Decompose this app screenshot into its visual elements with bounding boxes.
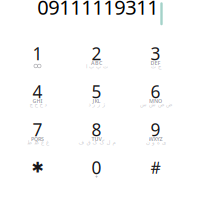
staticText: 2: [91, 42, 101, 65]
button[interactable]: 6: [126, 77, 185, 115]
button[interactable]: 7: [8, 115, 67, 153]
button[interactable]: 4: [8, 77, 67, 115]
button[interactable]: 1: [8, 39, 67, 77]
button[interactable]: ✱: [8, 153, 67, 191]
staticText: 8: [91, 118, 101, 141]
staticText: JKL: [92, 97, 100, 105]
staticText: GHI: [32, 97, 42, 105]
staticText: +: [95, 173, 98, 181]
staticText: 5: [91, 80, 101, 103]
staticText: #: [150, 157, 160, 178]
staticText: 4: [32, 80, 42, 103]
button[interactable]: 9: [126, 115, 185, 153]
staticText: 9: [150, 118, 160, 141]
staticText: م ل گ ک ق ف: [78, 139, 115, 146]
staticText: ج ث: [150, 63, 160, 70]
staticText: 1: [32, 42, 42, 65]
staticText: ی ه و ن: [145, 139, 165, 146]
button[interactable]: #: [126, 153, 185, 191]
staticText: 6: [150, 80, 160, 103]
staticText: 3: [150, 42, 160, 65]
button[interactable]: 2: [67, 39, 126, 77]
staticText: غ ع ظ ط: [26, 139, 48, 146]
button[interactable]: 8: [67, 115, 126, 153]
staticText: DEF: [150, 59, 160, 67]
staticText: TUV: [91, 135, 101, 143]
button[interactable]: 3: [126, 39, 185, 77]
staticText: د خ ح چ: [29, 101, 46, 108]
button[interactable]: 0: [67, 153, 126, 191]
staticText: 7: [32, 118, 42, 141]
staticText: ABC: [91, 59, 102, 67]
staticText: ت پ ب ا: [85, 63, 107, 70]
staticText: MNO: [149, 97, 162, 105]
staticText: 0: [91, 156, 101, 179]
staticText: ✱: [31, 159, 43, 176]
staticText: 09111119311: [37, 0, 158, 20]
staticText: PQRS: [31, 135, 44, 143]
staticText: WXYZ: [148, 135, 162, 143]
button[interactable]: 5: [67, 77, 126, 115]
staticText: ض ص ش س: [139, 101, 171, 108]
staticText: ژ ز ر ذ: [88, 101, 105, 108]
